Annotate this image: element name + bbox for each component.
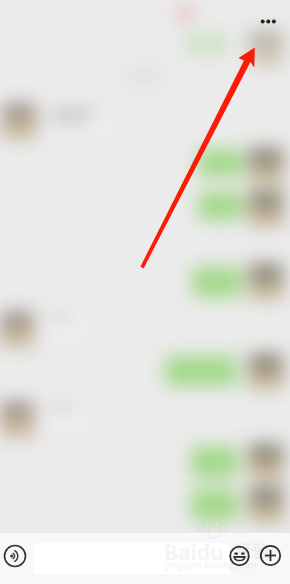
button[interactable]: Message input [34, 542, 230, 569]
button[interactable]: Emoji [228, 544, 253, 569]
button[interactable]: Voice message [3, 544, 28, 569]
button[interactable]: More [258, 544, 283, 569]
button[interactable]: More options [255, 8, 283, 36]
